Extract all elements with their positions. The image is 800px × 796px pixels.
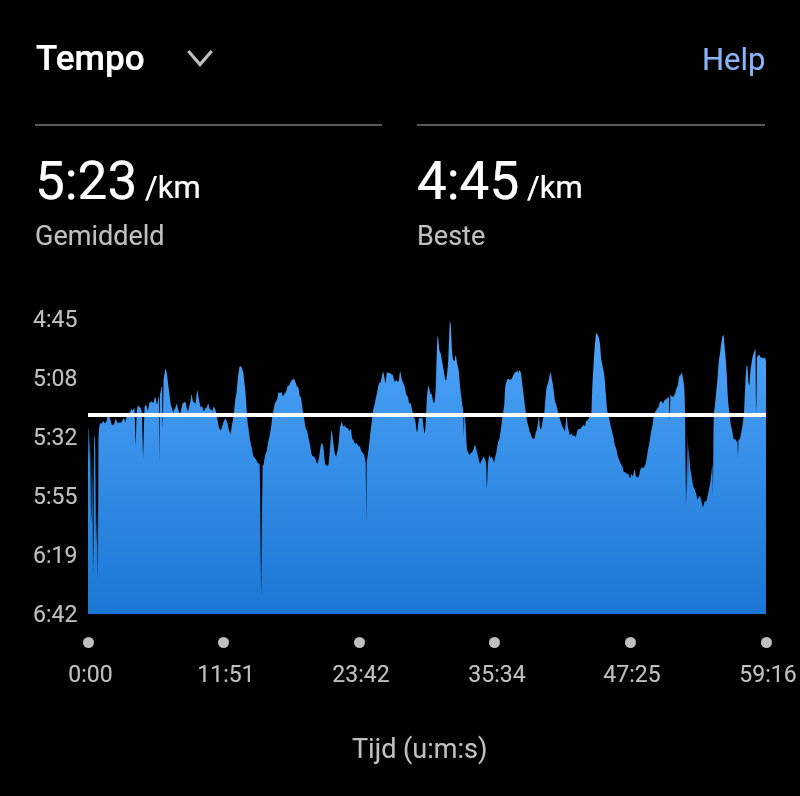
staticText: 35:34 (468, 661, 526, 688)
staticText: Tijd (u:m:s) (352, 733, 488, 765)
staticText: 5:23 (35, 150, 138, 212)
staticText: 4:45 (33, 306, 78, 333)
staticText: Gemiddeld (35, 220, 165, 252)
staticText: Help (702, 41, 766, 77)
staticText: /km (145, 169, 201, 205)
other: Show more (183, 40, 217, 74)
staticText: 6:42 (33, 601, 78, 628)
staticText: 6:19 (33, 542, 78, 569)
staticText: Tempo (36, 38, 145, 79)
staticText: 11:51 (197, 661, 255, 688)
staticText: 0:00 (68, 661, 113, 688)
staticText: 23:42 (332, 661, 390, 688)
staticText: /km (527, 169, 583, 205)
button[interactable]: Tempo (36, 38, 217, 79)
staticText: 5:08 (33, 365, 78, 392)
staticText: 59:16 (739, 661, 797, 688)
staticText: 47:25 (603, 661, 661, 688)
staticText: 4:45 (417, 150, 520, 212)
button[interactable]: Help (684, 24, 780, 96)
staticText: Beste (417, 220, 486, 252)
staticText: 5:55 (33, 483, 78, 510)
staticText: 5:32 (33, 424, 78, 451)
